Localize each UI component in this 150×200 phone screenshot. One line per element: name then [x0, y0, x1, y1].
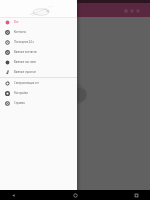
staticText: Важные скрытые — [14, 70, 36, 74]
staticText: Важные контакты — [14, 50, 37, 54]
button[interactable]: Back — [5, 190, 21, 200]
staticText: Справка — [14, 101, 25, 105]
button[interactable]: Важные смс звон — [0, 57, 77, 67]
button[interactable]: Справка — [0, 98, 77, 108]
staticText: Синхронизация сет — [14, 81, 39, 85]
button[interactable]: Настройки — [0, 88, 77, 98]
button[interactable]: Важные контакты — [0, 47, 77, 57]
staticText: Контакты — [14, 30, 27, 34]
button[interactable]: Все — [0, 17, 77, 27]
button[interactable]: Home — [67, 190, 83, 200]
staticText: Важные смс звон — [14, 60, 37, 64]
button[interactable]: Важные скрытые — [0, 67, 77, 77]
button[interactable]: Последние 24 ч — [0, 37, 77, 47]
button[interactable]: Контакты — [0, 27, 77, 37]
staticText: Все — [14, 20, 19, 24]
button[interactable]: Синхронизация сет — [0, 78, 77, 88]
staticText: Последние 24 ч — [14, 40, 35, 44]
button[interactable]: Recent apps — [128, 190, 144, 200]
staticText: Настройки — [14, 91, 28, 95]
